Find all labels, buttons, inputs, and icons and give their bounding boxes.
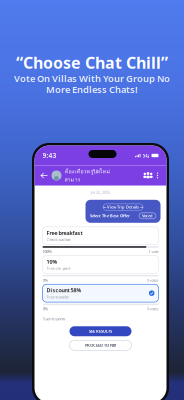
staticText: Vote On Villas With Your Group No — [14, 72, 170, 85]
staticText: 9:43 — [42, 151, 56, 160]
staticText: 100% — [42, 249, 52, 254]
staticText: สามาร — [64, 175, 80, 184]
staticText: 10% — [46, 258, 57, 265]
button[interactable]: SEE RESULTS — [69, 326, 131, 336]
button[interactable]: PROCEED TO PAY — [69, 340, 131, 350]
button[interactable]: Free breakfast — [42, 227, 158, 245]
staticText: Jul 22, 2025 — [91, 189, 110, 195]
staticText: Select The Best Offer — [90, 213, 130, 218]
staticText: 0 participants — [42, 316, 65, 321]
staticText: ← View Trip Details → — [103, 204, 143, 210]
staticText: PROCEED TO PAY — [85, 343, 116, 348]
staticText: Free breakfast — [46, 229, 82, 236]
staticText: SEE RESULTS — [89, 329, 112, 334]
staticText: “Choose Chat Chill” — [16, 52, 168, 73]
button[interactable]: 10% — [42, 255, 158, 273]
staticText: Free car park — [46, 266, 70, 271]
staticText: 0% — [42, 277, 48, 283]
staticText: 0 votes — [146, 306, 158, 311]
staticText: 1 vote — [148, 249, 158, 254]
staticText: More Endless Chats! — [46, 83, 138, 95]
staticText: 0 votes — [146, 277, 158, 283]
button[interactable]: Discount 58% — [42, 284, 158, 302]
button[interactable]: Members — [142, 171, 153, 179]
staticText: Voted — [142, 213, 153, 218]
staticText: Free transfer — [46, 294, 69, 300]
button[interactable]: More options — [153, 171, 161, 180]
button[interactable]: Back — [39, 170, 48, 181]
staticText: 5G — [142, 152, 149, 159]
staticText: 0% — [42, 306, 48, 311]
staticText: Check out late — [46, 237, 70, 242]
staticText: Discount 58% — [46, 287, 81, 294]
staticText: ห้องเทียวหรูปิดใหม่ — [64, 167, 110, 175]
